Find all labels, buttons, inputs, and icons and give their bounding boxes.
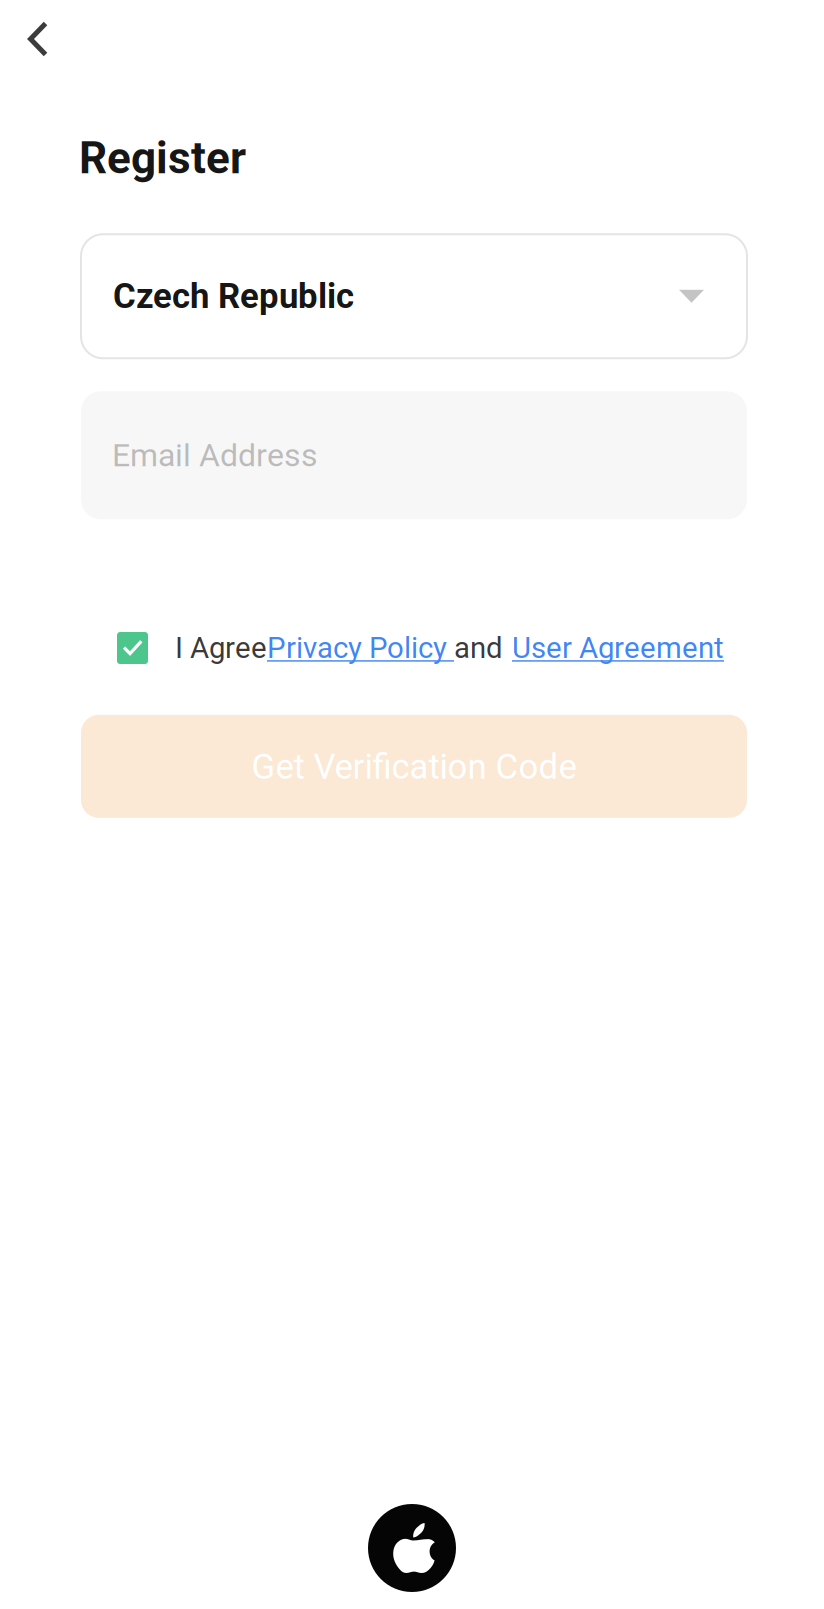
staticText: Email Address: [112, 437, 318, 474]
staticText: Czech Republic: [113, 276, 354, 316]
button[interactable]: Email Address: [81, 391, 747, 519]
staticText: Get Verification Code: [251, 747, 576, 787]
button[interactable]: I agree to the terms: [117, 632, 148, 664]
staticText: User Agreement: [512, 631, 724, 665]
button[interactable]: Back: [0, 0, 74, 77]
button[interactable]: Get Verification Code: [81, 715, 747, 818]
button[interactable]: Privacy Policy: [267, 631, 454, 665]
staticText: and: [454, 631, 503, 665]
staticText: I Agree: [175, 631, 267, 665]
button[interactable]: Czech Republic: [81, 234, 747, 358]
button[interactable]: User Agreement: [512, 631, 724, 665]
staticText: Privacy Policy: [267, 631, 454, 665]
staticText: Register: [79, 133, 246, 183]
